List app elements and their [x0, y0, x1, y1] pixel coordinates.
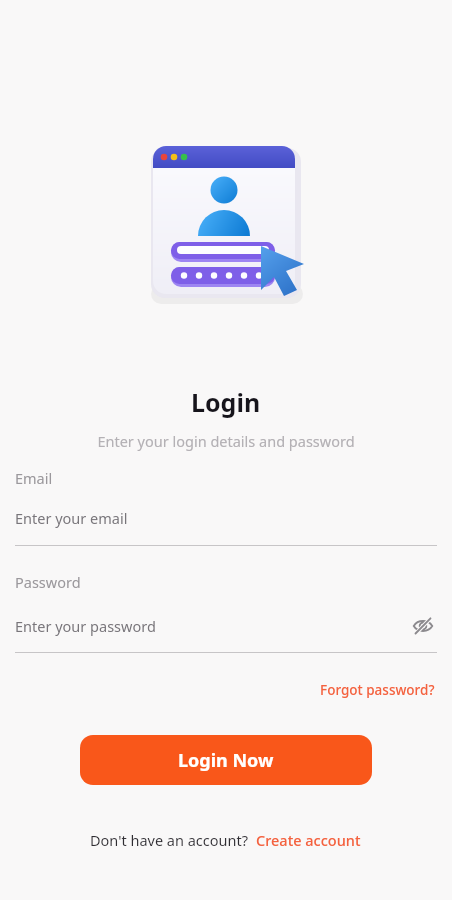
button[interactable]: Login Now [80, 735, 372, 785]
button[interactable]: Email [15, 468, 437, 546]
button[interactable]: Forgot password? [318, 677, 437, 703]
staticText: Login Now [178, 748, 274, 773]
staticText: Enter your email [15, 508, 128, 528]
staticText: Password [15, 572, 81, 592]
staticText: Forgot password? [320, 681, 435, 699]
button[interactable]: Show password [409, 612, 437, 640]
staticText: Enter your login details and password [97, 431, 355, 451]
button[interactable]: Password [15, 572, 437, 653]
staticText: Login [191, 385, 261, 419]
button[interactable]: Create account [255, 826, 362, 854]
staticText: Create account [256, 830, 361, 850]
staticText: Email [15, 468, 53, 488]
staticText: Enter your password [15, 616, 156, 636]
staticText: Don't have an account? [90, 830, 248, 850]
